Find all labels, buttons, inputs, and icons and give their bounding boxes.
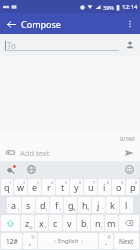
staticText: ' bbox=[116, 225, 117, 230]
staticText: m bbox=[107, 217, 116, 229]
staticText: ‹ bbox=[54, 237, 56, 245]
staticText: To bbox=[7, 40, 16, 51]
button[interactable]: d bbox=[36, 197, 49, 213]
button[interactable]: r bbox=[42, 179, 55, 195]
button[interactable]: q bbox=[1, 179, 13, 195]
staticText: o bbox=[116, 181, 122, 193]
staticText: y bbox=[74, 181, 79, 193]
button[interactable]: To bbox=[0, 34, 140, 56]
button[interactable]: g bbox=[64, 197, 77, 213]
button[interactable]: Next bbox=[114, 233, 139, 249]
staticText: h bbox=[82, 199, 88, 211]
button[interactable]: p bbox=[126, 179, 139, 195]
staticText: a bbox=[11, 199, 17, 211]
staticText: 0 bbox=[135, 180, 138, 185]
button[interactable]: Add text bbox=[20, 148, 122, 158]
staticText: English bbox=[58, 237, 79, 245]
staticText: ; bbox=[130, 207, 132, 212]
button[interactable]: x bbox=[35, 215, 48, 231]
button[interactable]: k bbox=[106, 197, 119, 213]
staticText: d bbox=[40, 199, 46, 211]
staticText: v bbox=[67, 217, 72, 229]
staticText: 12:14 bbox=[122, 3, 138, 11]
button[interactable]: Stickers bbox=[4, 163, 17, 176]
button[interactable]: More options bbox=[123, 17, 137, 31]
button[interactable]: w bbox=[14, 179, 27, 195]
button[interactable]: Language bbox=[25, 163, 38, 176]
staticText: e bbox=[32, 181, 38, 193]
button[interactable]: e bbox=[28, 179, 41, 195]
button[interactable]: Add contact bbox=[124, 39, 136, 51]
staticText: x bbox=[39, 217, 44, 229]
button[interactable]: Back bbox=[4, 17, 18, 31]
staticText: " bbox=[102, 207, 104, 212]
staticText: 4 bbox=[51, 180, 54, 185]
staticText: i bbox=[103, 181, 106, 193]
button[interactable]: o bbox=[112, 179, 125, 195]
staticText: \ bbox=[18, 207, 20, 212]
staticText: 3 bbox=[37, 180, 40, 185]
staticText: j bbox=[97, 199, 100, 211]
button[interactable]: 12# bbox=[1, 233, 22, 249]
staticText: p bbox=[130, 181, 136, 193]
button[interactable]: y bbox=[70, 179, 83, 195]
staticText: q bbox=[4, 181, 10, 193]
staticText: Next bbox=[119, 237, 134, 246]
button[interactable]: n bbox=[91, 215, 104, 231]
button[interactable]: j bbox=[92, 197, 105, 213]
staticText: 9 bbox=[121, 180, 124, 185]
staticText: w bbox=[17, 181, 25, 193]
button[interactable]: , bbox=[23, 233, 37, 249]
button[interactable]: s bbox=[22, 197, 35, 213]
staticText: ? bbox=[101, 225, 103, 230]
button[interactable]: f bbox=[50, 197, 63, 213]
staticText: 2 bbox=[23, 180, 26, 185]
staticText: , bbox=[73, 225, 75, 230]
staticText: f bbox=[55, 199, 59, 211]
staticText: , bbox=[29, 236, 32, 247]
staticText: $ bbox=[87, 207, 90, 212]
button[interactable]: . bbox=[99, 233, 113, 249]
button[interactable]: a bbox=[7, 197, 21, 213]
button[interactable]: Emoji bbox=[123, 163, 136, 176]
staticText: 12# bbox=[6, 237, 18, 246]
button[interactable]: Shift bbox=[1, 215, 20, 231]
staticText: 39% bbox=[103, 4, 114, 11]
button[interactable]: Attach bbox=[4, 146, 17, 159]
button[interactable]: v bbox=[63, 215, 76, 231]
staticText: 8 bbox=[107, 180, 110, 185]
staticText: ) bbox=[60, 207, 62, 212]
staticText: 6 bbox=[79, 180, 82, 185]
staticText: _ bbox=[32, 207, 34, 212]
staticText: z bbox=[25, 217, 30, 229]
button[interactable]: z bbox=[21, 215, 34, 231]
button[interactable]: ‹ bbox=[38, 233, 98, 249]
staticText: Compose bbox=[21, 18, 61, 30]
staticText: @ bbox=[29, 225, 33, 230]
button[interactable]: Send bbox=[122, 146, 136, 160]
staticText: n bbox=[95, 217, 101, 229]
staticText: 5 bbox=[65, 180, 68, 185]
button[interactable]: i bbox=[98, 179, 111, 195]
staticText: l bbox=[125, 199, 128, 211]
button[interactable]: u bbox=[84, 179, 97, 195]
button[interactable]: Backspace bbox=[119, 215, 139, 231]
staticText: c bbox=[53, 217, 58, 229]
staticText: b bbox=[81, 217, 87, 229]
staticText: s bbox=[26, 199, 31, 211]
button[interactable]: c bbox=[49, 215, 62, 231]
button[interactable]: m bbox=[105, 215, 118, 231]
staticText: r bbox=[47, 181, 51, 193]
button[interactable]: l bbox=[120, 197, 133, 213]
staticText: u bbox=[88, 181, 94, 193]
staticText: : bbox=[116, 207, 118, 212]
button[interactable]: h bbox=[78, 197, 91, 213]
staticText: k bbox=[110, 199, 115, 211]
staticText: 7 bbox=[93, 180, 96, 185]
button[interactable]: b bbox=[77, 215, 90, 231]
staticText: / bbox=[45, 225, 47, 230]
button[interactable]: t bbox=[56, 179, 69, 195]
staticText: 0/160 bbox=[120, 135, 135, 142]
staticText: . bbox=[59, 225, 61, 230]
staticText: ( bbox=[46, 207, 48, 212]
